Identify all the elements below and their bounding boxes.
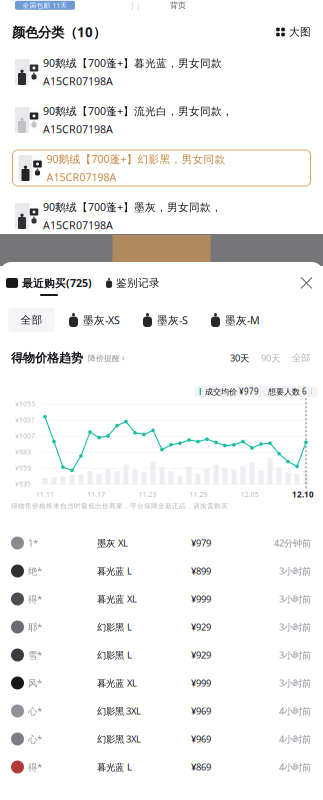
staticText: 幻影黑 L [97, 649, 132, 661]
staticText: 90鹅绒【700蓬+】墨灰，男女同款， [43, 200, 222, 214]
staticText: 墨灰-XS [83, 313, 120, 327]
staticText: 幻影黑 3XL [97, 733, 141, 745]
staticText: 得物售价格将来自当时最低出价商家，平台保障全新正品，请按需购买 [11, 502, 228, 510]
staticText: ¥869 [191, 761, 211, 773]
staticText: 幻影黑 3XL [97, 705, 141, 717]
button[interactable]: 心* [0, 725, 323, 753]
button[interactable]: 雪* [0, 641, 323, 669]
staticText: 11.17 [87, 490, 105, 499]
button[interactable]: 心* [0, 697, 323, 725]
staticText: 30天 [230, 352, 249, 364]
staticText: 4小时前 [279, 761, 311, 773]
staticText: ¥1055 [15, 400, 35, 408]
staticText: ¥929 [191, 649, 211, 661]
staticText: 全国包邮 11天 [22, 1, 67, 10]
staticText: ¥999 [191, 593, 211, 605]
staticText: 3小时前 [279, 621, 311, 633]
staticText: 颜色分类（10） [12, 23, 106, 41]
button[interactable]: 墨灰-XS [69, 308, 120, 332]
staticText: 降价提醒 › [88, 353, 124, 363]
button[interactable]: 鉴别记录 [106, 276, 160, 295]
button[interactable]: Close [301, 277, 312, 294]
staticText: 90鹅绒【700蓬+】流光白，男女同款， [43, 104, 233, 118]
staticText: ¥1031 [15, 416, 35, 424]
staticText: 90天 [261, 352, 280, 364]
staticText: ¥969 [191, 733, 211, 745]
staticText: 得* [28, 761, 42, 773]
staticText: ¥983 [15, 448, 31, 456]
button[interactable]: 90鹅绒【700蓬+】流光白，男女同款， [9, 102, 314, 138]
staticText: 全部 [292, 352, 310, 364]
staticText: 4小时前 [279, 733, 311, 745]
staticText: 12.10 [292, 489, 314, 500]
button[interactable]: 全部 [8, 308, 55, 332]
button[interactable]: 耶* [0, 613, 323, 641]
staticText: 墨灰-S [157, 313, 188, 327]
staticText: 心* [28, 705, 42, 717]
staticText: 雪* [28, 649, 42, 661]
button[interactable]: 墨灰-M [211, 308, 260, 332]
staticText: 墨灰 XL [97, 537, 128, 549]
staticText: 大图 [289, 25, 311, 38]
staticText: 心* [28, 733, 42, 745]
staticText: A15CR07198A [43, 218, 113, 232]
staticText: 得物价格趋势 [11, 351, 83, 365]
staticText: A15CR07198A [46, 170, 116, 184]
button[interactable]: 绝* [0, 557, 323, 585]
button[interactable]: 90鹅绒【700蓬+】暮光蓝，男女同款 [9, 54, 314, 90]
button[interactable]: 风* [0, 669, 323, 697]
staticText: ¥969 [191, 705, 211, 717]
staticText: 暮光蓝 L [97, 565, 132, 577]
staticText: 绝* [28, 565, 42, 577]
staticText: 42分钟前 [274, 537, 311, 549]
staticText: 幻影黑 L [97, 621, 132, 633]
staticText: 暮光蓝 XL [97, 593, 137, 605]
button[interactable]: 得* [0, 753, 323, 781]
button[interactable]: 大图 [276, 25, 311, 38]
staticText: 4小时前 [279, 705, 311, 717]
staticText: 11.11 [36, 490, 54, 499]
staticText: 墨灰-M [225, 313, 260, 327]
staticText: 暮光蓝 XL [97, 677, 137, 689]
button[interactable]: 最近购买(725) [6, 276, 92, 296]
staticText: ¥929 [191, 621, 211, 633]
staticText: ¥899 [191, 565, 211, 577]
staticText: 鉴别记录 [116, 276, 160, 289]
staticText: 风* [28, 677, 42, 689]
button[interactable]: 90鹅绒【700蓬+】幻影黑，男女同款 [9, 150, 314, 186]
staticText: | | [130, 0, 140, 11]
staticText: 背页 [170, 0, 186, 10]
button[interactable]: 墨灰-S [143, 308, 188, 332]
staticText: 得* [28, 593, 42, 605]
staticText: ¥959 [15, 464, 31, 472]
staticText: 最近购买(725) [22, 276, 92, 290]
button[interactable]: 90鹅绒【700蓬+】墨灰，男女同款， [9, 198, 314, 234]
button[interactable]: 得* [0, 585, 323, 613]
staticText: 11.23 [138, 490, 156, 499]
staticText: 3小时前 [279, 593, 311, 605]
staticText: 90鹅绒【700蓬+】幻影黑，男女同款 [46, 152, 225, 166]
staticText: 3小时前 [279, 565, 311, 577]
staticText: ¥979 [191, 537, 211, 549]
staticText: ¥935 [15, 480, 31, 488]
staticText: 3小时前 [279, 677, 311, 689]
staticText: 1* [28, 537, 38, 549]
staticText: 全部 [20, 313, 42, 326]
staticText: 暮光蓝 L [97, 761, 132, 773]
staticText: 耶* [28, 621, 42, 633]
button[interactable]: 1* [0, 529, 323, 557]
staticText: ¥999 [191, 677, 211, 689]
staticText: 想要人数 6 [268, 386, 307, 397]
staticText: A15CR07198A [43, 122, 113, 136]
staticText: 成交均价 ¥979 [205, 386, 259, 397]
staticText: 11.29 [190, 490, 208, 499]
staticText: 12.05 [241, 490, 259, 499]
staticText: 90鹅绒【700蓬+】暮光蓝，男女同款 [43, 56, 222, 70]
staticText: A15CR07198A [43, 74, 113, 88]
staticText: ¥1007 [15, 432, 35, 440]
staticText: 3小时前 [279, 649, 311, 661]
